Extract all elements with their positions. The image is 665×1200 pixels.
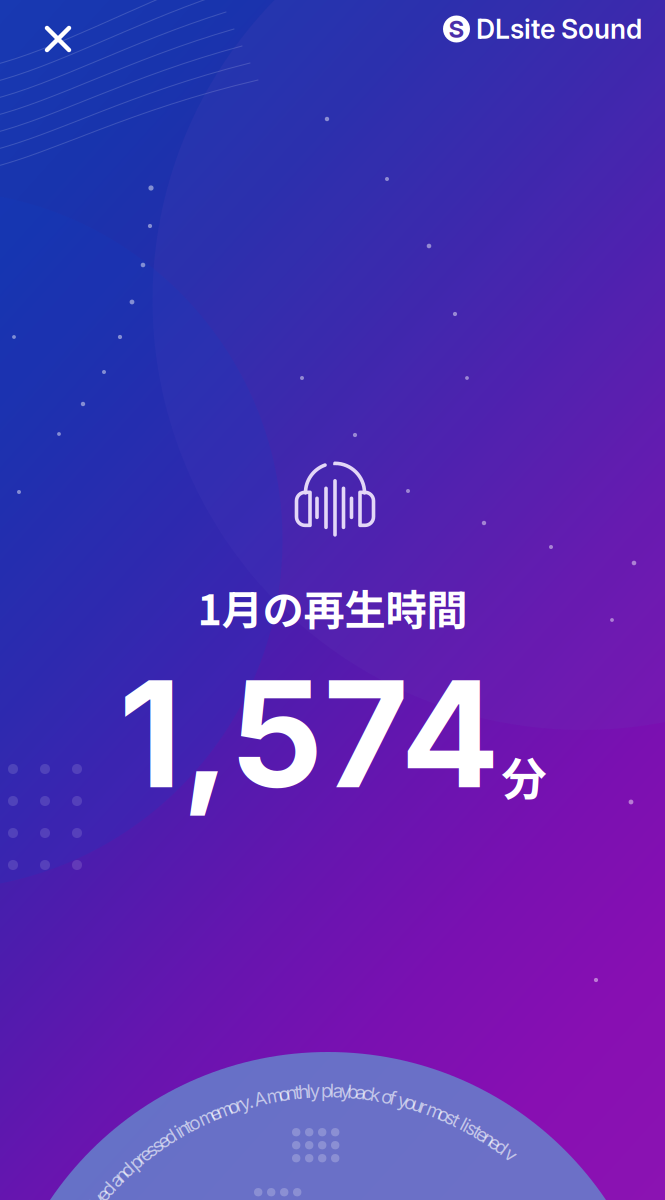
staticText: e bbox=[210, 1102, 221, 1124]
staticText: o bbox=[278, 1083, 289, 1105]
staticText bbox=[379, 1084, 384, 1107]
staticText: . bbox=[248, 1090, 253, 1112]
staticText bbox=[197, 1109, 202, 1132]
staticText: 1月の再生時間 bbox=[197, 577, 467, 637]
staticText bbox=[129, 1154, 134, 1177]
staticText: o bbox=[227, 1095, 238, 1118]
staticText: i bbox=[464, 1114, 469, 1137]
staticText: p bbox=[321, 1079, 332, 1102]
staticText: e bbox=[140, 1143, 151, 1165]
staticText: DLsite Sound bbox=[476, 13, 642, 45]
staticText: r bbox=[137, 1147, 144, 1169]
staticText: t bbox=[453, 1109, 459, 1131]
staticText: m bbox=[198, 1106, 214, 1128]
staticText: d bbox=[496, 1136, 507, 1158]
staticText: s bbox=[146, 1138, 156, 1161]
staticText: d bbox=[103, 1177, 114, 1200]
staticText: l bbox=[307, 1080, 312, 1102]
staticText: y bbox=[240, 1091, 250, 1114]
staticText: n bbox=[116, 1164, 127, 1186]
staticText: a bbox=[355, 1081, 365, 1104]
staticText: m bbox=[427, 1100, 443, 1122]
staticText: 分 bbox=[501, 743, 546, 809]
staticText: d bbox=[164, 1125, 175, 1148]
staticText: r bbox=[235, 1093, 242, 1116]
staticText: s bbox=[446, 1106, 456, 1129]
staticText: l bbox=[330, 1079, 335, 1102]
staticText bbox=[110, 1173, 115, 1196]
staticText: e bbox=[477, 1123, 488, 1146]
button[interactable]: Close bbox=[33, 14, 83, 64]
staticText: o bbox=[381, 1085, 392, 1108]
staticText: n bbox=[286, 1082, 297, 1104]
staticText: e bbox=[98, 1183, 109, 1200]
staticText: f bbox=[389, 1087, 396, 1109]
staticText: y bbox=[340, 1080, 350, 1102]
staticText bbox=[264, 1086, 269, 1108]
staticText: o bbox=[405, 1091, 416, 1114]
staticText: s bbox=[152, 1134, 162, 1156]
staticText bbox=[425, 1097, 430, 1119]
staticText: v bbox=[506, 1143, 516, 1165]
staticText: i bbox=[176, 1120, 181, 1143]
staticText bbox=[395, 1088, 400, 1110]
staticText: t bbox=[186, 1114, 192, 1137]
staticText: o bbox=[438, 1103, 449, 1126]
staticText: m bbox=[266, 1084, 282, 1107]
staticText: s bbox=[467, 1117, 477, 1140]
staticText: A bbox=[254, 1087, 267, 1110]
staticText: u bbox=[412, 1093, 423, 1116]
staticText: a bbox=[333, 1079, 343, 1102]
staticText bbox=[504, 1139, 509, 1162]
staticText: 1,574 bbox=[118, 645, 499, 823]
staticText: y bbox=[310, 1079, 320, 1102]
staticText: y bbox=[398, 1089, 408, 1112]
staticText: n bbox=[483, 1127, 494, 1150]
staticText: v bbox=[93, 1189, 103, 1200]
staticText: d bbox=[121, 1158, 132, 1181]
staticText: a bbox=[111, 1169, 121, 1192]
staticText: m bbox=[216, 1098, 232, 1121]
staticText: S bbox=[448, 14, 464, 43]
staticText: e bbox=[158, 1129, 169, 1152]
staticText: t bbox=[294, 1081, 300, 1103]
staticText: c bbox=[362, 1082, 373, 1105]
staticText: r bbox=[420, 1095, 427, 1118]
staticText bbox=[251, 1089, 256, 1111]
staticText: p bbox=[130, 1151, 141, 1173]
staticText: h bbox=[298, 1080, 309, 1103]
staticText: t bbox=[474, 1120, 480, 1143]
staticText: n bbox=[178, 1117, 189, 1140]
staticText: k bbox=[370, 1083, 380, 1106]
staticText: o bbox=[189, 1112, 200, 1134]
staticText bbox=[458, 1111, 463, 1133]
staticText bbox=[318, 1079, 323, 1102]
staticText: e bbox=[490, 1131, 501, 1154]
staticText: l bbox=[461, 1113, 466, 1135]
staticText: b bbox=[347, 1080, 358, 1103]
staticText bbox=[172, 1122, 177, 1145]
